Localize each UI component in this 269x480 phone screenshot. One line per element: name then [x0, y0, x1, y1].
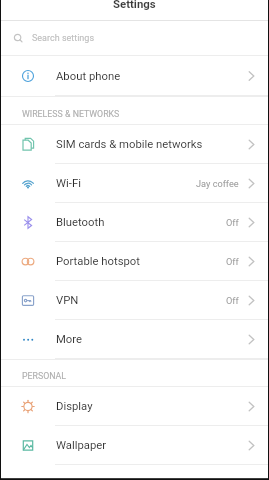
button[interactable]: VPN	[1, 281, 268, 320]
staticText: Bluetooth	[56, 216, 105, 229]
button[interactable]: Wi-Fi	[1, 164, 268, 203]
staticText: VPN	[56, 294, 79, 307]
button[interactable]: Display	[1, 387, 268, 426]
staticText: Jay coffee	[196, 178, 239, 189]
staticText: Wallpaper	[56, 439, 107, 452]
button[interactable]: More	[1, 320, 268, 359]
staticText: Display	[56, 400, 93, 413]
button[interactable]: About phone	[1, 56, 268, 96]
staticText: Settings	[113, 0, 156, 10]
button[interactable]: Bluetooth	[1, 203, 268, 242]
button[interactable]: Portable hotspot	[1, 242, 268, 281]
staticText: SIM cards & mobile networks	[56, 138, 203, 151]
staticText: Off	[226, 256, 239, 267]
button[interactable]: SIM cards & mobile networks	[1, 125, 268, 164]
staticText: WIRELESS & NETWORKS	[22, 109, 120, 119]
staticText: Portable hotspot	[56, 255, 140, 268]
button[interactable]: Wallpaper	[1, 426, 268, 465]
staticText: Search settings	[32, 33, 95, 44]
staticText: Wi-Fi	[56, 177, 81, 190]
staticText: Off	[226, 295, 239, 306]
staticText: More	[56, 333, 83, 346]
staticText: About phone	[56, 70, 121, 83]
button[interactable]: Search settings	[1, 21, 268, 56]
staticText: Off	[226, 217, 239, 228]
staticText: PERSONAL	[22, 371, 67, 381]
